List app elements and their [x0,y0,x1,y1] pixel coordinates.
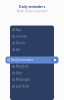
staticText: Last third [16,84,29,88]
staticText: Isha [16,71,22,75]
staticText: Fajr [16,28,21,32]
button[interactable]: Last third [10,83,54,90]
staticText: Dhuhr [16,41,25,45]
staticText: Midnight [16,78,30,82]
button[interactable]: Fajr [10,26,54,33]
button[interactable]: Dhuhr [10,40,54,46]
button[interactable]: Daily reminder [5,56,58,63]
staticText: Daily reminders [18,4,45,9]
staticText: Daily reminder [11,58,33,62]
staticText: Asr [16,48,20,52]
staticText: Maghrib [16,64,29,68]
button[interactable]: Maghrib [10,63,54,70]
staticText: Never miss any prayer [16,9,47,13]
button[interactable]: Sunrise [10,33,54,40]
button[interactable]: Midnight [10,76,54,83]
button[interactable]: Asr [10,46,54,53]
button[interactable]: Isha [10,70,54,76]
staticText: Sunrise [16,35,27,38]
